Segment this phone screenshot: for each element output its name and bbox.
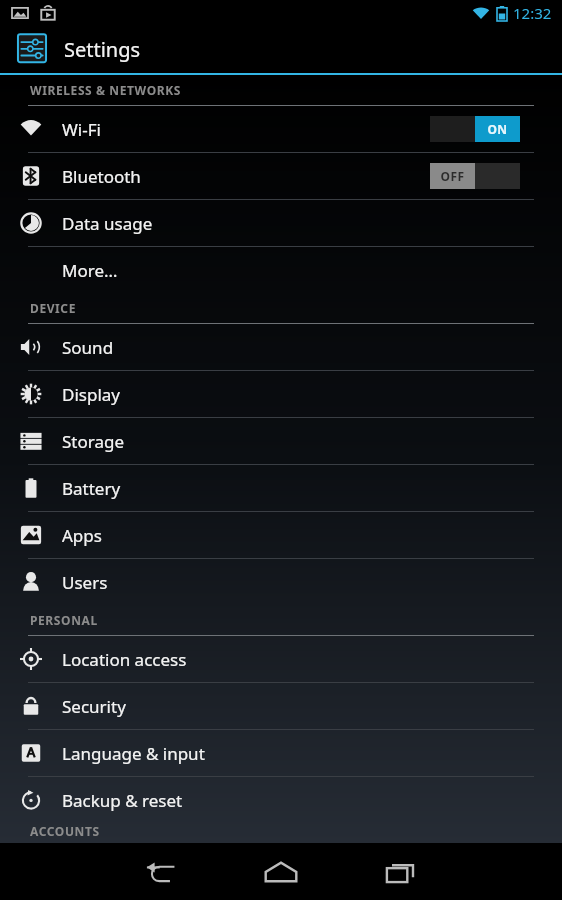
button[interactable]: Home xyxy=(238,843,324,900)
staticText: Wi-Fi xyxy=(62,118,101,141)
button[interactable]: Battery xyxy=(0,465,562,512)
button[interactable]: Wi-Fi on xyxy=(430,116,520,142)
staticText: Sound xyxy=(62,336,114,359)
button[interactable]: Display xyxy=(0,371,562,418)
staticText: WIRELESS & NETWORKS xyxy=(30,82,181,98)
button[interactable]: Bluetooth off xyxy=(430,163,520,189)
staticText: ON xyxy=(487,121,508,137)
staticText: Settings xyxy=(64,36,141,63)
button[interactable]: Language & input xyxy=(0,730,562,777)
staticText: DEVICE xyxy=(30,300,76,316)
staticText: OFF xyxy=(440,168,465,184)
staticText: PERSONAL xyxy=(30,612,98,628)
button[interactable]: Sound xyxy=(0,324,562,371)
button[interactable]: Recent apps xyxy=(358,843,444,900)
button[interactable]: Wi-Fi xyxy=(0,106,562,153)
staticText: Users xyxy=(62,571,108,594)
staticText: Backup & reset xyxy=(62,789,183,812)
staticText: Storage xyxy=(62,430,125,453)
staticText: Apps xyxy=(62,524,102,547)
staticText: ACCOUNTS xyxy=(30,823,100,836)
button[interactable]: Back xyxy=(118,843,204,900)
staticText: Language & input xyxy=(62,742,205,765)
staticText: Battery xyxy=(62,477,121,500)
staticText: 12:32 xyxy=(513,3,552,23)
button[interactable]: More… xyxy=(0,247,562,293)
button[interactable]: Bluetooth xyxy=(0,153,562,200)
button[interactable]: Users xyxy=(0,559,562,605)
button[interactable]: Storage xyxy=(0,418,562,465)
button[interactable]: Backup & reset xyxy=(0,777,562,823)
staticText: Location access xyxy=(62,648,187,671)
button[interactable]: Apps xyxy=(0,512,562,559)
button[interactable]: Location access xyxy=(0,636,562,683)
button[interactable]: Security xyxy=(0,683,562,730)
staticText: Data usage xyxy=(62,212,153,235)
button[interactable]: Data usage xyxy=(0,200,562,247)
staticText: Bluetooth xyxy=(62,165,141,188)
staticText: Security xyxy=(62,695,126,718)
staticText: More… xyxy=(62,259,118,282)
staticText: Display xyxy=(62,383,120,406)
